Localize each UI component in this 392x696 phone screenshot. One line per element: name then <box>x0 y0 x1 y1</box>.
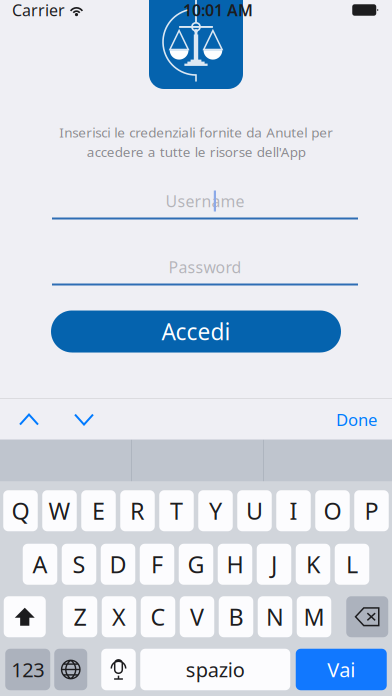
staticText: Q <box>11 495 29 526</box>
button[interactable]: Done <box>331 400 382 439</box>
staticText: Carrier <box>12 0 65 21</box>
staticText: G <box>187 549 204 580</box>
staticText: Vai <box>327 656 355 683</box>
button[interactable]: spazio <box>140 649 290 690</box>
staticText: Inserisci le credenziali fornite da Anut… <box>59 123 333 161</box>
staticText: H <box>226 549 243 580</box>
button[interactable]: Switch keyboard <box>54 649 87 690</box>
button[interactable]: Vai <box>296 649 387 690</box>
staticText: C <box>150 601 165 632</box>
button[interactable]: K <box>296 544 330 585</box>
staticText: W <box>48 495 70 526</box>
staticText: 123 <box>11 656 44 683</box>
button[interactable]: I <box>276 490 311 531</box>
staticText: L <box>346 549 358 580</box>
button[interactable]: J <box>257 544 291 585</box>
staticText: Accedi <box>161 316 230 346</box>
button[interactable]: W <box>42 490 77 531</box>
staticText: R <box>130 495 145 526</box>
staticText: D <box>109 549 126 580</box>
staticText: I <box>289 495 297 526</box>
button[interactable]: O <box>315 490 350 531</box>
button[interactable]: Shift <box>4 596 46 637</box>
staticText: O <box>323 495 341 526</box>
staticText: Password <box>168 256 241 278</box>
button[interactable]: H <box>218 544 252 585</box>
staticText: spazio <box>186 656 245 683</box>
button[interactable]: B <box>219 596 253 637</box>
staticText: M <box>303 601 324 632</box>
button[interactable]: Next field <box>65 404 103 436</box>
button[interactable]: P <box>354 490 389 531</box>
button[interactable]: Y <box>198 490 233 531</box>
button[interactable]: Delete <box>346 596 388 637</box>
button[interactable]: F <box>140 544 174 585</box>
staticText: F <box>151 549 163 580</box>
button[interactable]: R <box>120 490 155 531</box>
button[interactable]: L <box>335 544 369 585</box>
button[interactable]: U <box>237 490 272 531</box>
button[interactable]: Dictate <box>101 649 136 690</box>
button[interactable]: X <box>102 596 136 637</box>
button[interactable]: T <box>159 490 194 531</box>
staticText: 10:01 AM <box>183 0 253 21</box>
staticText: U <box>246 495 263 526</box>
staticText: Z <box>73 601 86 632</box>
staticText: V <box>190 601 204 632</box>
staticText: B <box>228 601 243 632</box>
button[interactable]: N <box>258 596 292 637</box>
staticText: Done <box>336 408 377 431</box>
staticText: S <box>72 549 85 580</box>
button[interactable]: V <box>180 596 214 637</box>
button[interactable]: Z <box>63 596 97 637</box>
button[interactable]: C <box>141 596 175 637</box>
staticText: J <box>271 549 277 580</box>
staticText: A <box>32 549 47 580</box>
button[interactable]: E <box>81 490 116 531</box>
staticText: K <box>306 549 320 580</box>
button[interactable]: S <box>62 544 96 585</box>
staticText: Y <box>209 495 222 526</box>
button[interactable]: Previous field <box>10 404 48 436</box>
button[interactable]: D <box>101 544 135 585</box>
button[interactable]: G <box>179 544 213 585</box>
button[interactable]: M <box>297 596 331 637</box>
staticText: E <box>92 495 105 526</box>
staticText: Username <box>165 190 244 212</box>
staticText: P <box>364 495 378 526</box>
staticText: T <box>170 495 183 526</box>
staticText: N <box>266 601 284 632</box>
button[interactable]: 123 <box>5 649 50 690</box>
staticText: X <box>112 601 126 632</box>
button[interactable]: A <box>23 544 57 585</box>
button[interactable]: Q <box>3 490 38 531</box>
button[interactable]: Accedi <box>51 310 341 352</box>
